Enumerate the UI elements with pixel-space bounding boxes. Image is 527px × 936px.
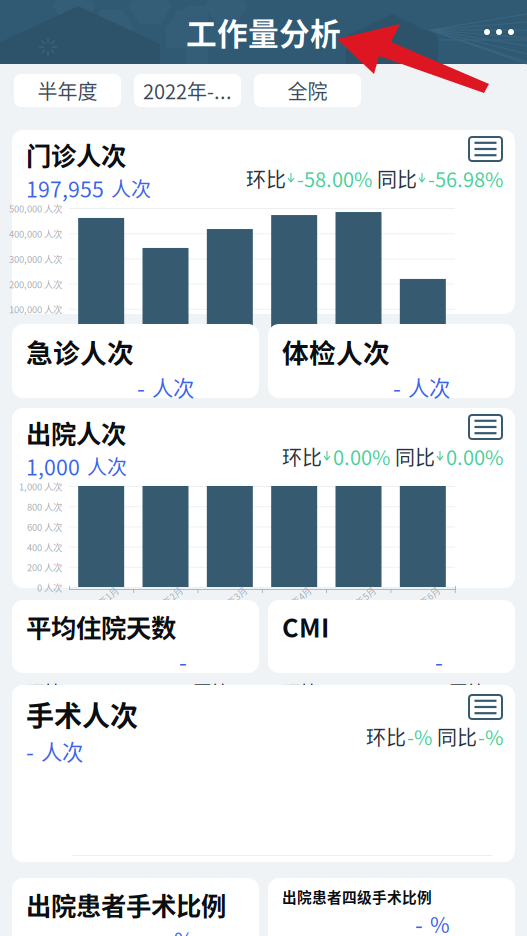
staticText: 400,000 人次: [9, 227, 62, 240]
staticText: 2022年3月: [208, 597, 251, 609]
staticText: %: [232, 677, 249, 704]
staticText: -: [415, 907, 423, 936]
staticText: 同比: [193, 677, 231, 704]
staticText: 1,000: [26, 451, 80, 482]
staticText: 200,000 人次: [9, 277, 62, 291]
staticText: 0.00%: [446, 442, 503, 471]
button[interactable]: 显示数据表: [468, 414, 503, 440]
staticText: 1,000 人次: [19, 480, 62, 493]
staticText: -: [179, 645, 187, 677]
staticText: -%: [478, 722, 503, 751]
staticText: -: [435, 645, 443, 677]
staticText: -58.00%: [297, 164, 372, 193]
staticText: 工作量分析: [186, 10, 341, 54]
staticText: -56.98%: [428, 164, 503, 193]
staticText: 人次: [408, 372, 450, 402]
staticText: 同比: [193, 403, 231, 430]
staticText: 环比: [246, 164, 286, 193]
staticText: 门诊人次: [26, 136, 126, 173]
staticText: -: [393, 371, 401, 403]
staticText: 300,000 人次: [9, 252, 62, 266]
staticText: 出院患者四级手术比例: [282, 886, 432, 907]
staticText: 197,955: [26, 173, 104, 204]
staticText: %: [430, 908, 450, 936]
staticText: 2022年2月: [144, 597, 187, 609]
staticText: 环比: [26, 677, 64, 704]
staticText: 出院患者手术比例: [26, 886, 226, 923]
staticText: 出院人次: [26, 414, 126, 451]
button[interactable]: 2022年-...: [134, 74, 241, 107]
staticText: 2022年-...: [143, 76, 232, 105]
staticText: CMI: [282, 608, 329, 645]
staticText: 环比: [366, 722, 406, 751]
staticText: 0.00%: [333, 442, 390, 471]
staticText: 同比: [437, 722, 477, 751]
staticText: 环比: [282, 677, 320, 704]
button[interactable]: 半年度: [14, 74, 121, 107]
staticText: %: [321, 403, 338, 430]
staticText: -: [137, 371, 145, 403]
staticText: 800 人次: [27, 500, 62, 513]
staticText: 半年度: [37, 76, 97, 105]
staticText: 手术人次: [26, 694, 138, 734]
staticText: 2022年6月: [401, 597, 444, 609]
staticText: 同比: [395, 442, 435, 471]
button[interactable]: 显示数据表: [468, 694, 503, 720]
staticText: %: [232, 403, 249, 430]
button[interactable]: 急诊人次: [12, 324, 259, 398]
staticText: 全院: [287, 76, 327, 105]
staticText: 体检人次: [282, 332, 390, 371]
button[interactable]: 出院患者手术比例: [12, 878, 259, 936]
staticText: 500,000 人次: [9, 202, 62, 215]
staticText: 2022年4月: [272, 597, 315, 609]
button[interactable]: 全院: [254, 74, 361, 107]
staticText: 同比: [449, 677, 487, 704]
staticText: 同比: [377, 164, 417, 193]
button[interactable]: 更多: [471, 1, 527, 63]
staticText: -%: [407, 722, 432, 751]
staticText: 急诊人次: [26, 332, 134, 371]
staticText: 人次: [41, 735, 83, 766]
staticText: 200 人次: [27, 560, 62, 574]
staticText: 100,000 人次: [9, 302, 62, 316]
staticText: 600 人次: [27, 520, 62, 534]
button[interactable]: 平均住院天数: [12, 600, 259, 673]
staticText: 人次: [152, 372, 194, 402]
staticText: %: [488, 403, 505, 430]
staticText: %: [65, 677, 82, 704]
staticText: 人次: [111, 174, 151, 203]
staticText: 人次: [87, 452, 127, 481]
staticText: 平均住院天数: [26, 608, 176, 645]
staticText: 400 人次: [27, 540, 62, 554]
button[interactable]: 出院患者四级手术比例: [268, 878, 515, 936]
button[interactable]: 体检人次: [268, 324, 515, 398]
staticText: 环比: [26, 403, 64, 430]
staticText: 同比: [449, 403, 487, 430]
button[interactable]: 显示数据表: [468, 136, 503, 162]
staticText: 2022年1月: [80, 597, 123, 609]
button[interactable]: CMI: [268, 600, 515, 673]
staticText: 2022年5月: [337, 597, 380, 609]
staticText: -: [26, 734, 34, 767]
staticText: 0 人次: [37, 581, 62, 594]
staticText: 环比: [282, 403, 320, 430]
staticText: %: [174, 924, 194, 936]
staticText: %: [65, 403, 82, 430]
staticText: %: [488, 677, 505, 704]
staticText: 环比: [282, 442, 322, 471]
staticText: %: [321, 677, 338, 704]
